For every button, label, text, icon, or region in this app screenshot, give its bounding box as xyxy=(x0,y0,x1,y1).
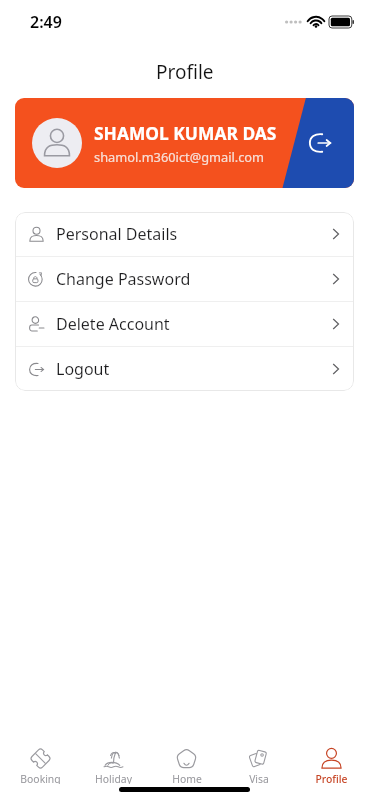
button[interactable]: Logout xyxy=(303,126,337,160)
button[interactable]: Personal Details xyxy=(15,212,354,256)
staticText: Logout xyxy=(56,358,110,380)
staticText: shamol.m360ict@gmail.com xyxy=(94,148,265,165)
button[interactable]: Visa xyxy=(228,748,289,784)
button[interactable]: Booking xyxy=(10,748,71,784)
button[interactable]: Logout xyxy=(15,347,354,391)
staticText: Profile xyxy=(315,772,348,784)
staticText: Visa xyxy=(249,772,269,784)
button[interactable]: Change Password xyxy=(15,257,354,301)
button[interactable]: Profile xyxy=(301,748,362,784)
staticText: 2:49 xyxy=(30,11,62,33)
staticText: Home xyxy=(172,772,202,784)
button[interactable]: Holiday xyxy=(83,748,144,784)
staticText: Profile xyxy=(156,59,214,85)
staticText: SHAMOL KUMAR DAS xyxy=(94,121,277,145)
staticText: Booking xyxy=(20,772,61,784)
staticText: Delete Account xyxy=(56,313,170,335)
button[interactable]: Home xyxy=(156,748,217,784)
staticText: Personal Details xyxy=(56,223,178,245)
staticText: Change Password xyxy=(56,268,191,290)
staticText: Holiday xyxy=(95,772,132,784)
button[interactable]: Delete Account xyxy=(15,302,354,346)
